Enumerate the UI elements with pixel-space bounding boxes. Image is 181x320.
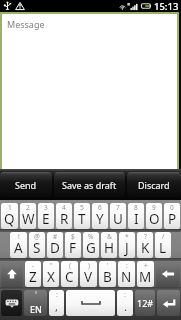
button[interactable]: #	[47, 232, 63, 258]
staticText: ,	[55, 299, 58, 314]
staticText: R	[60, 210, 69, 228]
button[interactable]: Discard	[127, 172, 181, 197]
staticText: S	[33, 239, 41, 257]
staticText: 4	[62, 203, 66, 212]
button[interactable]: 1	[1, 203, 18, 229]
button[interactable]: Save as draft	[54, 172, 125, 197]
staticText: :	[126, 261, 128, 270]
staticText: M	[139, 268, 152, 286]
button[interactable]: :	[118, 261, 135, 287]
staticText: N	[121, 268, 132, 286]
staticText: @	[34, 232, 40, 241]
staticText: W	[22, 210, 35, 228]
button[interactable]: :	[49, 290, 64, 316]
staticText: Z	[29, 268, 37, 286]
staticText: E	[42, 210, 50, 228]
staticText: Save as draft	[62, 179, 117, 191]
staticText: F	[69, 239, 77, 257]
button[interactable]: 7	[110, 203, 126, 229]
staticText: O	[149, 210, 160, 228]
button[interactable]: 12#	[135, 290, 155, 316]
staticText: 1	[8, 203, 12, 212]
staticText: I	[134, 210, 139, 228]
button[interactable]: %	[83, 232, 99, 258]
staticText: Q	[4, 210, 15, 228]
button[interactable]: Space	[66, 290, 115, 316]
staticText: D	[50, 239, 60, 257]
button[interactable]: Send	[0, 172, 52, 197]
button[interactable]: 3	[38, 203, 54, 229]
staticText: A	[14, 239, 23, 257]
staticText: U	[113, 210, 123, 228]
button[interactable]: ?	[137, 232, 153, 258]
button[interactable]: -	[25, 261, 41, 287]
button[interactable]: @	[29, 232, 45, 258]
staticText: J	[125, 239, 129, 257]
staticText: 12#	[137, 297, 154, 309]
staticText: -	[32, 261, 35, 270]
button[interactable]: !	[10, 232, 27, 258]
button[interactable]: 5	[74, 203, 90, 229]
staticText: X	[47, 268, 55, 286]
button[interactable]: )	[80, 261, 97, 287]
staticText: 7	[116, 203, 120, 212]
button[interactable]: 8	[128, 203, 144, 229]
button[interactable]: 9	[146, 203, 162, 229]
button[interactable]: /	[155, 232, 171, 258]
staticText: '	[107, 261, 109, 270]
staticText: )	[88, 261, 90, 270]
staticText: 3	[44, 203, 48, 212]
staticText: #	[53, 232, 58, 241]
staticText: &	[107, 232, 112, 241]
button[interactable]: Enter	[157, 290, 180, 316]
button[interactable]: 2	[20, 203, 36, 229]
button[interactable]: Switch keyboard	[1, 290, 22, 316]
staticText: 5	[80, 203, 84, 212]
staticText: ?	[144, 232, 147, 241]
staticText: 15:13	[154, 0, 179, 12]
staticText: 2	[26, 203, 30, 212]
staticText: 8	[134, 203, 138, 212]
staticText: $	[71, 232, 75, 241]
staticText: +	[144, 261, 148, 270]
staticText: 9	[152, 203, 156, 212]
staticText: B	[103, 268, 112, 286]
staticText: EN	[30, 303, 42, 315]
staticText: K	[141, 239, 150, 257]
button[interactable]: +	[137, 261, 154, 287]
staticText: P	[168, 210, 177, 228]
staticText: Y	[96, 210, 104, 228]
button[interactable]: :	[117, 290, 133, 316]
staticText: !	[18, 232, 20, 241]
button[interactable]: 4	[56, 203, 72, 229]
button[interactable]: 0	[164, 203, 180, 229]
staticText: Discard	[138, 179, 170, 191]
button[interactable]: &	[101, 232, 117, 258]
button[interactable]: '	[99, 261, 116, 287]
button[interactable]: $	[65, 232, 81, 258]
button[interactable]: (	[61, 261, 78, 287]
staticText: 0	[170, 203, 174, 212]
button[interactable]: Input language English	[24, 290, 47, 316]
button[interactable]: *	[119, 232, 135, 258]
staticText: Send	[15, 179, 37, 191]
staticText: :	[124, 290, 126, 300]
staticText: *	[125, 232, 129, 241]
staticText: T	[78, 210, 86, 228]
staticText: (	[69, 261, 71, 270]
staticText: Message	[7, 18, 45, 30]
staticText: %	[88, 232, 94, 241]
staticText: :	[56, 290, 58, 300]
staticText: /	[162, 232, 165, 241]
button[interactable]: "	[43, 261, 59, 287]
button[interactable]: Shift	[1, 261, 23, 287]
button[interactable]: Backspace	[156, 261, 180, 287]
staticText: .	[124, 299, 127, 314]
staticText: C	[65, 268, 74, 286]
button[interactable]: 6	[92, 203, 108, 229]
staticText: V	[84, 268, 93, 286]
staticText: H	[104, 239, 115, 257]
staticText: L	[159, 239, 167, 257]
staticText: 6	[98, 203, 102, 212]
staticText: "	[50, 261, 53, 270]
